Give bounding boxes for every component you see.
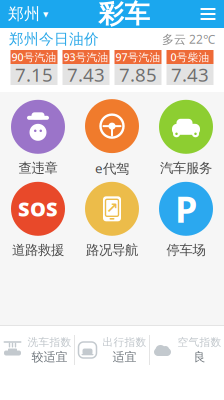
staticText: e代驾 [95,159,129,177]
button[interactable]: 出行指数 [75,328,149,372]
staticText: 0号柴油 [170,50,209,64]
staticText: 汽车服务 [160,160,212,176]
staticText: 90号汽油 [11,50,56,64]
button[interactable]: P [149,179,223,261]
button[interactable]: 空气指数 [150,328,224,372]
button[interactable]: 郑州 [0,0,56,28]
button[interactable]: 汽车服务 [149,97,223,179]
staticText: 查违章 [18,160,57,176]
staticText: 洗车指数 [27,336,71,349]
staticText: 良 [193,350,205,364]
button[interactable]: 97号汽油 [114,50,161,85]
staticText: ▾ [43,8,48,20]
staticText: 彩 [98,0,123,29]
button[interactable]: 90号汽油 [10,50,57,85]
staticText: 适宜 [112,350,136,364]
staticText: 93号汽油 [63,50,108,64]
staticText: ↗ [106,199,118,216]
button[interactable]: SOS [1,179,75,261]
staticText: 郑州 [8,4,40,24]
staticText: SOS [18,195,58,222]
staticText: 多云 22℃ [162,31,215,47]
staticText: 97号汽油 [115,50,160,64]
staticText: 车 [124,0,149,29]
staticText: 较适宜 [31,350,67,364]
button[interactable]: 彩车 首页 [94,0,153,28]
staticText: 7.43 [67,62,105,87]
button[interactable]: 洗车指数 [0,328,74,372]
staticText: 空气指数 [177,336,221,349]
staticText: 7.85 [119,62,157,87]
button[interactable]: 查违章 [1,97,75,179]
staticText: P [175,185,197,233]
button[interactable]: 93号汽油 [62,50,109,85]
staticText: 郑州今日油价 [9,30,99,48]
button[interactable]: 菜单 [192,0,224,28]
button[interactable]: 0号柴油 [166,50,213,85]
staticText: 出行指数 [102,336,146,349]
staticText: 路况导航 [86,242,138,258]
staticText: 停车场 [166,242,205,258]
staticText: 7.15 [15,62,53,87]
button[interactable]: ↗ [75,179,149,261]
button[interactable]: e代驾 [75,97,149,179]
staticText: 道路救援 [12,242,64,258]
staticText: 7.43 [171,62,209,87]
